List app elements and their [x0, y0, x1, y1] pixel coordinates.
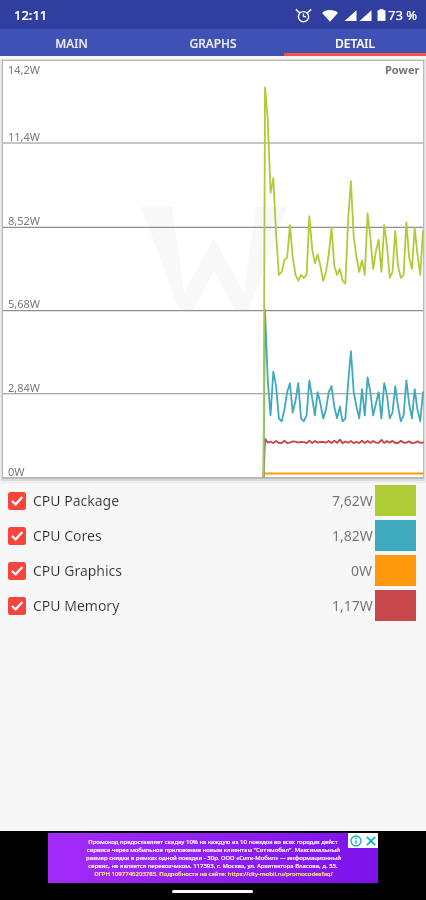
staticText: CPU Graphics [33, 561, 123, 580]
staticText: ОГРН 1097746203785. Подробности на сайте… [94, 870, 333, 878]
staticText: CPU Package [33, 491, 120, 510]
button[interactable]: CPU Memory [0, 588, 426, 623]
staticText: Промокод предоставляет скидку 10% на каж… [88, 838, 338, 846]
staticText: DETAIL [335, 35, 375, 51]
staticText: CPU Cores [33, 526, 102, 545]
staticText: GRAPHS [189, 35, 237, 51]
button[interactable]: GRAPHS [142, 29, 284, 56]
staticText: 0W [351, 561, 373, 580]
button[interactable]: CPU Graphics [0, 553, 426, 588]
staticText: MAIN [55, 35, 88, 51]
staticText: 11,4W [8, 129, 41, 144]
staticText: размер скидки в рамках одной поездки - 3… [86, 854, 341, 862]
staticText: CPU Memory [33, 596, 120, 615]
staticText: 5,68W [8, 296, 41, 311]
button[interactable]: Ad information [348, 833, 363, 848]
staticText: 73 % [388, 6, 418, 24]
button[interactable]: Промокод предоставляет скидку 10% на каж… [48, 833, 378, 883]
staticText: 2,84W [8, 380, 41, 395]
button[interactable]: CPU Cores [0, 518, 426, 553]
button[interactable]: Close ad [363, 833, 378, 848]
staticText: Power [385, 62, 420, 77]
button[interactable]: CPU Package [0, 483, 426, 518]
staticText: 12:11 [14, 6, 48, 24]
staticText: 0W [8, 464, 25, 479]
staticText: сервис, не является перевозчиком. 117393… [88, 862, 338, 870]
button[interactable]: DETAIL [284, 29, 426, 56]
button[interactable]: MAIN [0, 29, 142, 56]
staticText: 14,2W [8, 62, 41, 77]
staticText: 1,17W [332, 596, 373, 615]
staticText: сервиса через мобильное приложение новым… [87, 846, 340, 854]
staticText: 7,62W [332, 491, 373, 510]
staticText: 8,52W [8, 213, 41, 228]
staticText: 1,82W [332, 526, 373, 545]
